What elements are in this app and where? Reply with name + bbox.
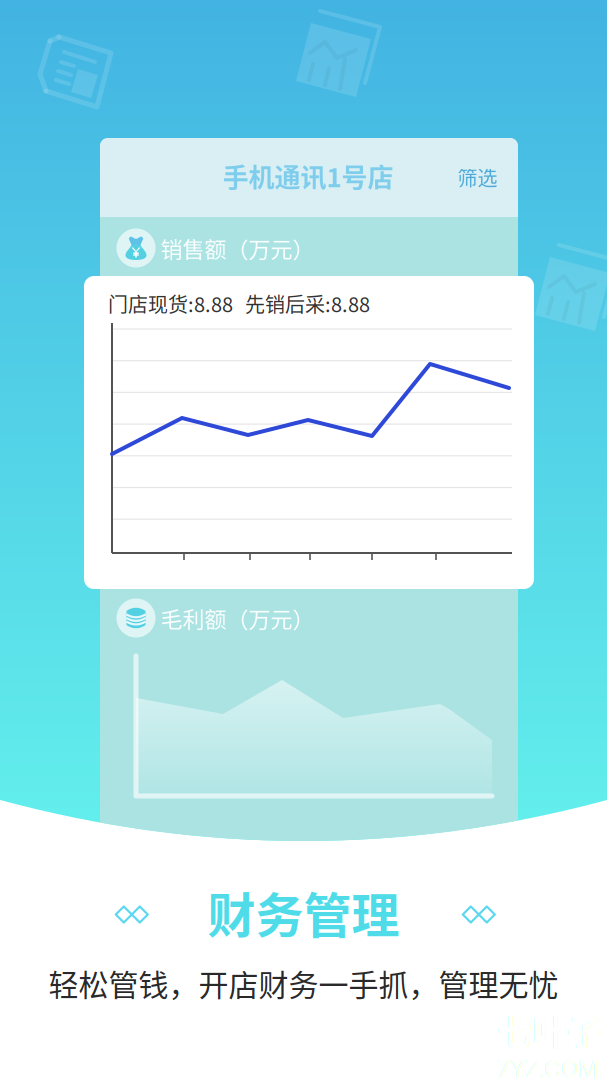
staticText: 手机通讯1号店	[222, 157, 393, 195]
staticText: 财务管理	[207, 877, 399, 947]
staticText: 筛选	[457, 162, 497, 191]
staticText: 门店现货:8.88 先销后采:8.88	[108, 289, 370, 318]
staticText: 轻松管钱，开店财务一手抓，管理无忧	[48, 961, 558, 1005]
staticText: 7YZ.COM	[497, 1055, 598, 1080]
staticText: 销售额（万元）	[160, 232, 314, 264]
staticText: 毛利额（万元）	[160, 602, 314, 634]
staticText: 七叶子	[497, 1005, 602, 1055]
button[interactable]: 筛选	[441, 150, 513, 203]
